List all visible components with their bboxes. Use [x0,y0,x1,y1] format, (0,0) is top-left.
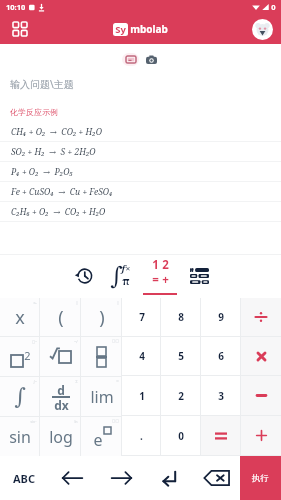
staticText: ABC [13,471,35,486]
staticText: mbolab [130,22,168,36]
button[interactable]: Profile [252,19,273,40]
button[interactable]: ABC [0,456,48,500]
button[interactable]: ∫ [0,377,40,416]
staticText: e [93,429,103,451]
staticText: P₄ + O₂ → P₂O₅ [11,166,73,178]
button[interactable]: P₄ + O₂ → P₂O₅ [0,162,281,182]
button[interactable]: mul [241,337,281,375]
staticText: ∫ [14,384,26,410]
button[interactable]: add [241,416,281,455]
staticText: 输入问题\主题 [10,77,74,91]
button[interactable]: 1 [122,376,161,415]
staticText: ∫ᵇ [33,379,37,384]
staticText: ⁿ√ [74,339,78,344]
button[interactable]: 3 [201,376,241,415]
button[interactable]: Equals [201,416,241,455]
button[interactable]: . [122,416,161,455]
staticText: f× [121,262,131,275]
staticText: | [76,300,78,305]
staticText: x [15,305,25,330]
staticText: 化学反应示例 [10,107,58,117]
button[interactable]: Move right [96,456,146,500]
staticText: ln [74,419,78,424]
staticText: □ⁿ [32,339,37,344]
staticText: sin⁻ [30,419,37,424]
button[interactable]: History [64,254,102,298]
button[interactable]: Numbers [140,254,180,298]
button[interactable]: Backspace [193,456,240,500]
button[interactable]: lim [81,377,122,416]
staticText: □□ [112,339,119,343]
staticText: lim [90,386,114,408]
button[interactable]: ( [40,298,81,336]
staticText: Sy [115,23,126,36]
staticText: 1 [152,257,159,273]
staticText: xₑ [33,300,37,305]
staticText: ) [99,305,105,330]
button[interactable]: 2 [161,376,201,415]
button[interactable]: SO₂ + H₂ → S + 2H₂O [0,142,281,162]
staticText: d [57,382,65,398]
staticText: CH₄ + O₂ → CO₂ + H₂O [11,126,102,138]
button[interactable]: □□ [81,337,122,376]
staticText: 2 [178,389,184,403]
staticText: π [122,273,130,288]
button[interactable]: Move left [48,456,96,500]
staticText: 5 [178,349,184,363]
staticText: 4 [139,349,145,363]
staticText: ∫ [110,262,123,290]
staticText: ( [58,305,64,330]
button[interactable]: x [0,298,40,336]
staticText: 2 [162,257,169,273]
staticText: + [162,272,169,288]
button[interactable]: Camera input [143,53,160,66]
staticText: 0 [271,2,276,12]
button[interactable]: 执行 [240,456,281,500]
button[interactable]: log [40,417,81,456]
button[interactable]: 5 [161,337,201,375]
button[interactable]: Fe + CuSO₄ → Cu + FeSO₄ [0,182,281,202]
staticText: 3 [218,389,224,403]
button[interactable]: Functions [102,254,140,298]
staticText: 0 [178,429,184,443]
staticText: 1 [139,389,145,403]
button[interactable]: e [81,417,122,456]
button[interactable]: ) [81,298,122,336]
button[interactable]: d [40,377,81,416]
button[interactable]: 4 [122,337,161,375]
button[interactable]: 0 [161,416,201,455]
staticText: . [140,429,143,443]
staticText: 2 [24,348,31,363]
staticText: sin [9,426,31,448]
staticText: 8 [178,310,184,324]
staticText: □□ [112,419,119,423]
staticText: 执行 [252,473,269,484]
staticText: ∞ [116,379,119,383]
button[interactable]: C₂H₆ + O₂ → CO₂ + H₂O [0,202,281,222]
button[interactable]: Menu [9,18,31,40]
staticText: log [49,426,73,448]
button[interactable]: 7 [122,298,161,336]
staticText: 6 [218,349,224,363]
staticText: Fe + CuSO₄ → Cu + FeSO₄ [11,186,113,198]
button[interactable]: 9 [201,298,241,336]
button[interactable]: 8 [161,298,201,336]
staticText: C₂H₆ + O₂ → CO₂ + H₂O [11,206,106,218]
staticText: dx [54,397,69,413]
button[interactable]: New line [146,456,193,500]
button[interactable]: sin [0,417,40,456]
button[interactable]: Keyboard input [122,53,139,66]
button[interactable]: CH₄ + O₂ → CO₂ + H₂O [0,122,281,142]
button[interactable]: 6 [201,337,241,375]
staticText: = [152,272,159,288]
button[interactable]: sub [241,376,281,415]
staticText: 7 [139,310,145,324]
button[interactable]: div [241,298,281,336]
staticText: 10:10 [6,2,26,12]
staticText: | [117,300,119,305]
staticText: SO₂ + H₂ → S + 2H₂O [11,146,96,158]
staticText: Σ [75,379,78,384]
button[interactable]: ⁿ√ [40,337,81,376]
button[interactable]: Keypad layout [180,254,218,298]
button[interactable]: 2 [0,337,40,376]
